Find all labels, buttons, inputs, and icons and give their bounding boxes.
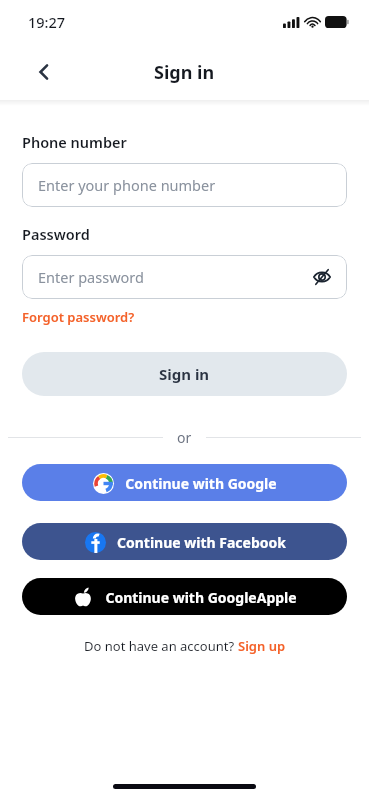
staticText: Sign in (154, 60, 215, 85)
button[interactable]: Show password (307, 262, 337, 292)
staticText: Continue with Google (125, 474, 277, 493)
staticText: Phone number (22, 132, 127, 152)
staticText: Continue with GoogleApple (105, 588, 297, 607)
button[interactable]: Continue with GoogleApple (22, 578, 347, 615)
button[interactable]: Enter your phone number (22, 163, 347, 207)
staticText: Forgot password? (22, 308, 135, 326)
button[interactable]: Continue with Facebook (22, 523, 347, 560)
button[interactable]: Forgot password? (22, 308, 135, 326)
staticText: Sign up (238, 637, 286, 655)
staticText: Password (22, 224, 90, 244)
button[interactable]: Enter password (22, 255, 347, 299)
staticText: or (177, 428, 192, 447)
button[interactable]: Back (22, 50, 66, 94)
staticText: Do not have an account? (84, 637, 238, 655)
staticText: Sign in (159, 364, 210, 384)
staticText: Enter password (38, 267, 144, 287)
button[interactable]: Continue with Google (22, 464, 347, 501)
staticText: Enter your phone number (38, 175, 216, 195)
staticText: Continue with Facebook (117, 533, 286, 552)
staticText: 19:27 (28, 12, 66, 32)
button[interactable]: Sign in (22, 352, 347, 396)
button[interactable]: Sign up (238, 637, 286, 655)
